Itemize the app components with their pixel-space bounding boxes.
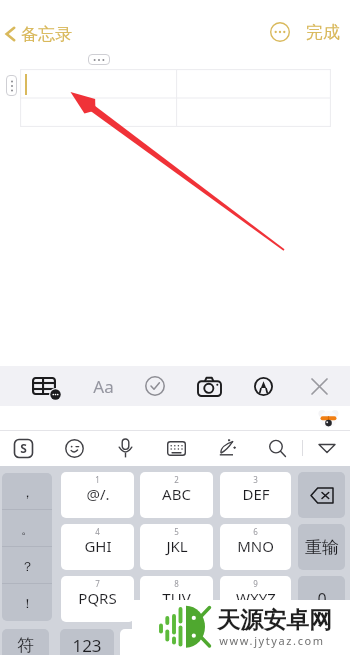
staticText: MNO xyxy=(237,536,274,556)
staticText: PQRS xyxy=(78,588,117,608)
button[interactable]: Column handle xyxy=(88,54,110,65)
button[interactable]: Handwriting xyxy=(214,431,240,465)
staticText: ， xyxy=(21,484,34,500)
staticText: 符 xyxy=(17,635,34,655)
staticText: 6 xyxy=(253,526,258,537)
button[interactable]: 9 xyxy=(220,576,291,622)
staticText: GHI xyxy=(84,536,112,556)
button[interactable]: Hide keyboard xyxy=(314,431,340,465)
staticText: 备忘录 xyxy=(21,24,72,45)
button[interactable]: Search xyxy=(264,431,290,465)
staticText: 3 xyxy=(253,474,258,485)
button[interactable]: 2 xyxy=(140,472,213,518)
button[interactable]: 4 xyxy=(61,524,134,570)
staticText: ！ xyxy=(21,595,34,611)
staticText: 123 xyxy=(72,634,102,655)
button[interactable]: ！ xyxy=(2,584,52,621)
button[interactable]: ， xyxy=(2,473,52,510)
staticText: 1 xyxy=(95,474,100,485)
staticText: 4 xyxy=(95,526,100,537)
staticText: TUV xyxy=(162,588,191,608)
button[interactable]: Voice input xyxy=(112,431,138,465)
staticText: Aa xyxy=(93,375,114,398)
button[interactable]: Markup xyxy=(245,368,281,404)
button[interactable]: 重输 xyxy=(298,524,345,570)
staticText: 完成 xyxy=(306,22,340,43)
button[interactable]: Camera xyxy=(191,368,227,404)
staticText: www.jytyaz.com xyxy=(219,633,325,648)
button[interactable]: Table xyxy=(26,368,62,404)
staticText: 2 xyxy=(174,474,179,485)
button[interactable]: Row handle xyxy=(6,75,17,96)
staticText: 天源安卓网 xyxy=(217,606,332,635)
staticText: 9 xyxy=(253,578,258,589)
staticText: 。 xyxy=(21,521,34,537)
button[interactable]: 3 xyxy=(220,472,291,518)
button[interactable]: Emoji xyxy=(61,431,87,465)
staticText: @/. xyxy=(86,484,110,504)
button[interactable]: Aa xyxy=(85,368,121,404)
button[interactable]: 符 xyxy=(2,629,49,655)
button[interactable]: Close xyxy=(301,368,337,404)
button[interactable]: 8 xyxy=(140,576,213,622)
staticText: JKL xyxy=(166,536,188,556)
button[interactable]: 。 xyxy=(2,510,52,547)
staticText: ？ xyxy=(21,558,34,574)
button[interactable]: More xyxy=(270,22,290,42)
button[interactable]: 1 xyxy=(61,472,134,518)
staticText: 8 xyxy=(174,578,179,589)
staticText: ABC xyxy=(162,484,191,504)
button[interactable]: Keyboard layout xyxy=(163,431,189,465)
button[interactable]: 5 xyxy=(140,524,213,570)
button[interactable]: Delete xyxy=(298,472,345,518)
button[interactable] xyxy=(298,629,345,655)
button[interactable]: Checklist xyxy=(137,368,173,404)
button[interactable]: Input method xyxy=(10,431,36,465)
staticText: 0 xyxy=(317,588,327,610)
staticText: 7 xyxy=(95,578,100,589)
button[interactable]: 123 xyxy=(60,629,114,655)
staticText: DEF xyxy=(242,484,270,504)
button[interactable]: 6 xyxy=(220,524,291,570)
staticText: WXYZ xyxy=(236,588,276,608)
button[interactable]: 完成 xyxy=(303,20,343,44)
staticText: 重输 xyxy=(305,537,339,558)
staticText: S xyxy=(20,440,27,456)
button[interactable]: 0 xyxy=(298,576,345,622)
button[interactable]: ？ xyxy=(2,547,52,584)
button[interactable]: 备忘录 xyxy=(3,19,72,49)
button[interactable] xyxy=(120,629,290,655)
staticText: 5 xyxy=(174,526,179,537)
button[interactable]: 7 xyxy=(61,576,134,622)
